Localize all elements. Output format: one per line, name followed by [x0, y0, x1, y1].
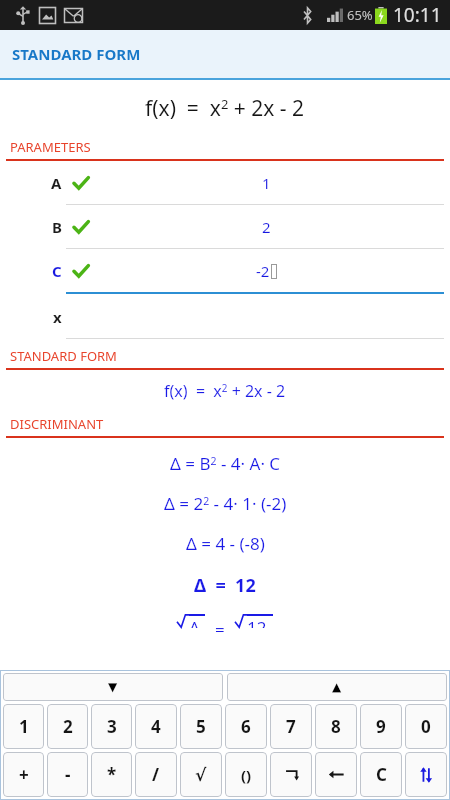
staticText: * — [107, 763, 117, 786]
button[interactable]: Backspace — [315, 752, 357, 797]
button[interactable]: A — [0, 161, 450, 205]
staticText: Δ — [189, 616, 200, 628]
staticText: 5 — [196, 715, 206, 738]
staticText: 2 — [63, 715, 73, 738]
staticText: = — [215, 618, 225, 632]
button[interactable]: Scroll down — [3, 673, 223, 701]
button[interactable]: Switch keyboard — [405, 752, 447, 797]
staticText: () — [241, 765, 252, 785]
staticText: Δ = B2 - 4· A· C — [170, 452, 281, 475]
staticText: f(x) = x2 + 2x - 2 — [164, 380, 286, 402]
button[interactable]: B — [0, 205, 450, 249]
staticText: PARAMETERS — [10, 138, 91, 156]
staticText: 7 — [286, 715, 296, 738]
button[interactable]: C — [0, 249, 450, 295]
button[interactable]: Scroll up — [227, 673, 447, 701]
staticText: / — [152, 763, 160, 786]
staticText: ▼ — [108, 680, 118, 694]
button[interactable]: - — [47, 752, 88, 797]
staticText: Δ = 12 — [194, 573, 256, 598]
button[interactable]: Enter — [270, 752, 312, 797]
button[interactable]: √ — [180, 752, 222, 797]
staticText: 4 — [151, 715, 161, 738]
button[interactable]: / — [135, 752, 177, 797]
button[interactable]: () — [225, 752, 267, 797]
staticText: STANDARD FORM — [10, 347, 117, 365]
staticText: B — [52, 217, 62, 237]
staticText: 2 — [262, 217, 271, 237]
button[interactable]: * — [91, 752, 132, 797]
staticText: f(x) = x2 + 2x - 2 — [145, 94, 305, 123]
staticText: 0 — [421, 715, 431, 738]
staticText: 3 — [107, 715, 117, 738]
button[interactable]: 1 — [3, 704, 44, 749]
staticText: 12 — [247, 616, 267, 628]
staticText: 1 — [19, 715, 29, 738]
staticText: C — [376, 763, 387, 786]
button[interactable]: 9 — [360, 704, 402, 749]
button[interactable]: 4 — [135, 704, 177, 749]
staticText: STANDARD FORM — [12, 44, 141, 64]
staticText: -2 — [256, 261, 270, 281]
button[interactable]: 3 — [91, 704, 132, 749]
staticText: x — [53, 307, 62, 327]
button[interactable]: 5 — [180, 704, 222, 749]
staticText: A — [51, 173, 62, 193]
staticText: 8 — [331, 715, 341, 738]
staticText: 9 — [376, 715, 386, 738]
button[interactable]: 0 — [405, 704, 447, 749]
staticText: C — [52, 261, 62, 281]
button[interactable]: 7 — [270, 704, 312, 749]
staticText: Δ = 4 - (-8) — [186, 532, 265, 555]
staticText: ▲ — [332, 680, 342, 694]
staticText: - — [65, 763, 71, 786]
button[interactable]: x — [0, 295, 450, 339]
staticText: 65% — [347, 6, 373, 24]
staticText: 10:11 — [393, 2, 442, 28]
button[interactable]: STANDARD FORM — [0, 30, 450, 78]
staticText: 1 — [262, 173, 271, 193]
staticText: DISCRIMINANT — [10, 415, 104, 433]
staticText: 6 — [241, 715, 251, 738]
button[interactable]: 2 — [47, 704, 88, 749]
button[interactable]: 6 — [225, 704, 267, 749]
button[interactable]: + — [3, 752, 44, 797]
staticText: Δ = 22 - 4· 1· (-2) — [164, 492, 287, 515]
button[interactable]: C — [360, 752, 402, 797]
staticText: √ — [195, 765, 207, 785]
staticText: + — [19, 763, 29, 786]
button[interactable]: 8 — [315, 704, 357, 749]
